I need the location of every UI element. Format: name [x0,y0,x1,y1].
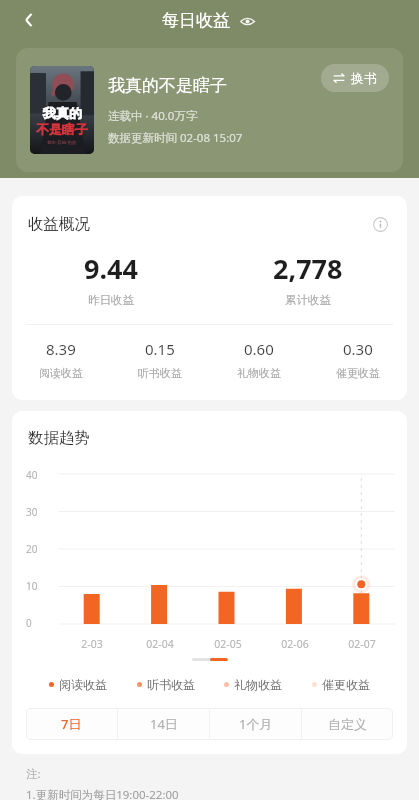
button[interactable]: 听书收益 [137,677,195,692]
staticText: 02-06 [281,637,309,651]
staticText: 1.更新时间为每日19:00-22:00 [26,787,179,800]
staticText: 0 [26,616,32,630]
staticText: 听书收益 [138,366,182,380]
button[interactable]: Info [369,213,391,235]
staticText: 30 [26,505,38,519]
staticText: 0.30 [343,339,373,359]
staticText: 我真的 [43,105,82,121]
button[interactable]: 换书 [321,64,389,92]
staticText: 不是瞎子 [36,121,88,137]
button[interactable]: 我真的 [16,48,403,172]
staticText: 20 [26,542,38,556]
button[interactable]: 催更收益 [312,677,370,692]
staticText: 收益概况 [28,214,90,234]
button[interactable]: 自定义 [302,708,393,740]
staticText: 都市·异能·热血 [47,139,77,145]
staticText: 8.39 [46,339,76,359]
staticText: 礼物收益 [237,366,281,380]
button[interactable]: 0.15 [110,339,209,380]
staticText: 自定义 [328,716,367,732]
staticText: 0.15 [145,339,175,359]
button[interactable]: Back [12,3,46,37]
staticText: 14日 [150,715,178,733]
staticText: 数据更新时间 02-08 15:07 [108,130,243,146]
button[interactable]: 7日 [26,708,117,740]
staticText: 我真的不是瞎子 [108,75,227,96]
staticText: 9.44 [84,250,138,287]
staticText: 2-03 [81,637,103,651]
button[interactable]: 阅读收益 [49,677,107,692]
staticText: 催更收益 [336,366,380,380]
staticText: 催更收益 [322,677,370,692]
staticText: 累计收益 [285,293,331,307]
button[interactable]: 0.60 [209,339,308,380]
staticText: 阅读收益 [59,677,107,692]
staticText: 注: [26,766,41,782]
staticText: 听书收益 [147,677,195,692]
staticText: 02-07 [348,637,376,651]
staticText: 每日收益 [162,10,230,31]
staticText: 连载中 · 40.0万字 [108,108,198,124]
staticText: 40 [26,468,38,482]
staticText: 7日 [61,715,82,733]
staticText: 昨日收益 [88,293,134,307]
button[interactable]: 1个月 [210,708,301,740]
staticText: 数据趋势 [28,428,90,448]
button[interactable]: 14日 [118,708,209,740]
staticText: 10 [26,579,38,593]
button[interactable]: 礼物收益 [224,677,282,692]
staticText: 阅读收益 [39,366,83,380]
button[interactable]: 9.44 [12,250,209,307]
button[interactable]: 2,778 [209,250,407,307]
button[interactable]: Toggle earnings visibility [237,11,257,31]
staticText: 1个月 [239,715,273,733]
staticText: 02-05 [214,637,242,651]
staticText: 换书 [351,70,377,86]
staticText: 礼物收益 [234,677,282,692]
staticText: 0.60 [244,339,274,359]
button[interactable]: 8.39 [12,339,110,380]
button[interactable]: 0.30 [308,339,407,380]
staticText: 02-04 [146,637,174,651]
staticText: 2,778 [273,250,343,287]
